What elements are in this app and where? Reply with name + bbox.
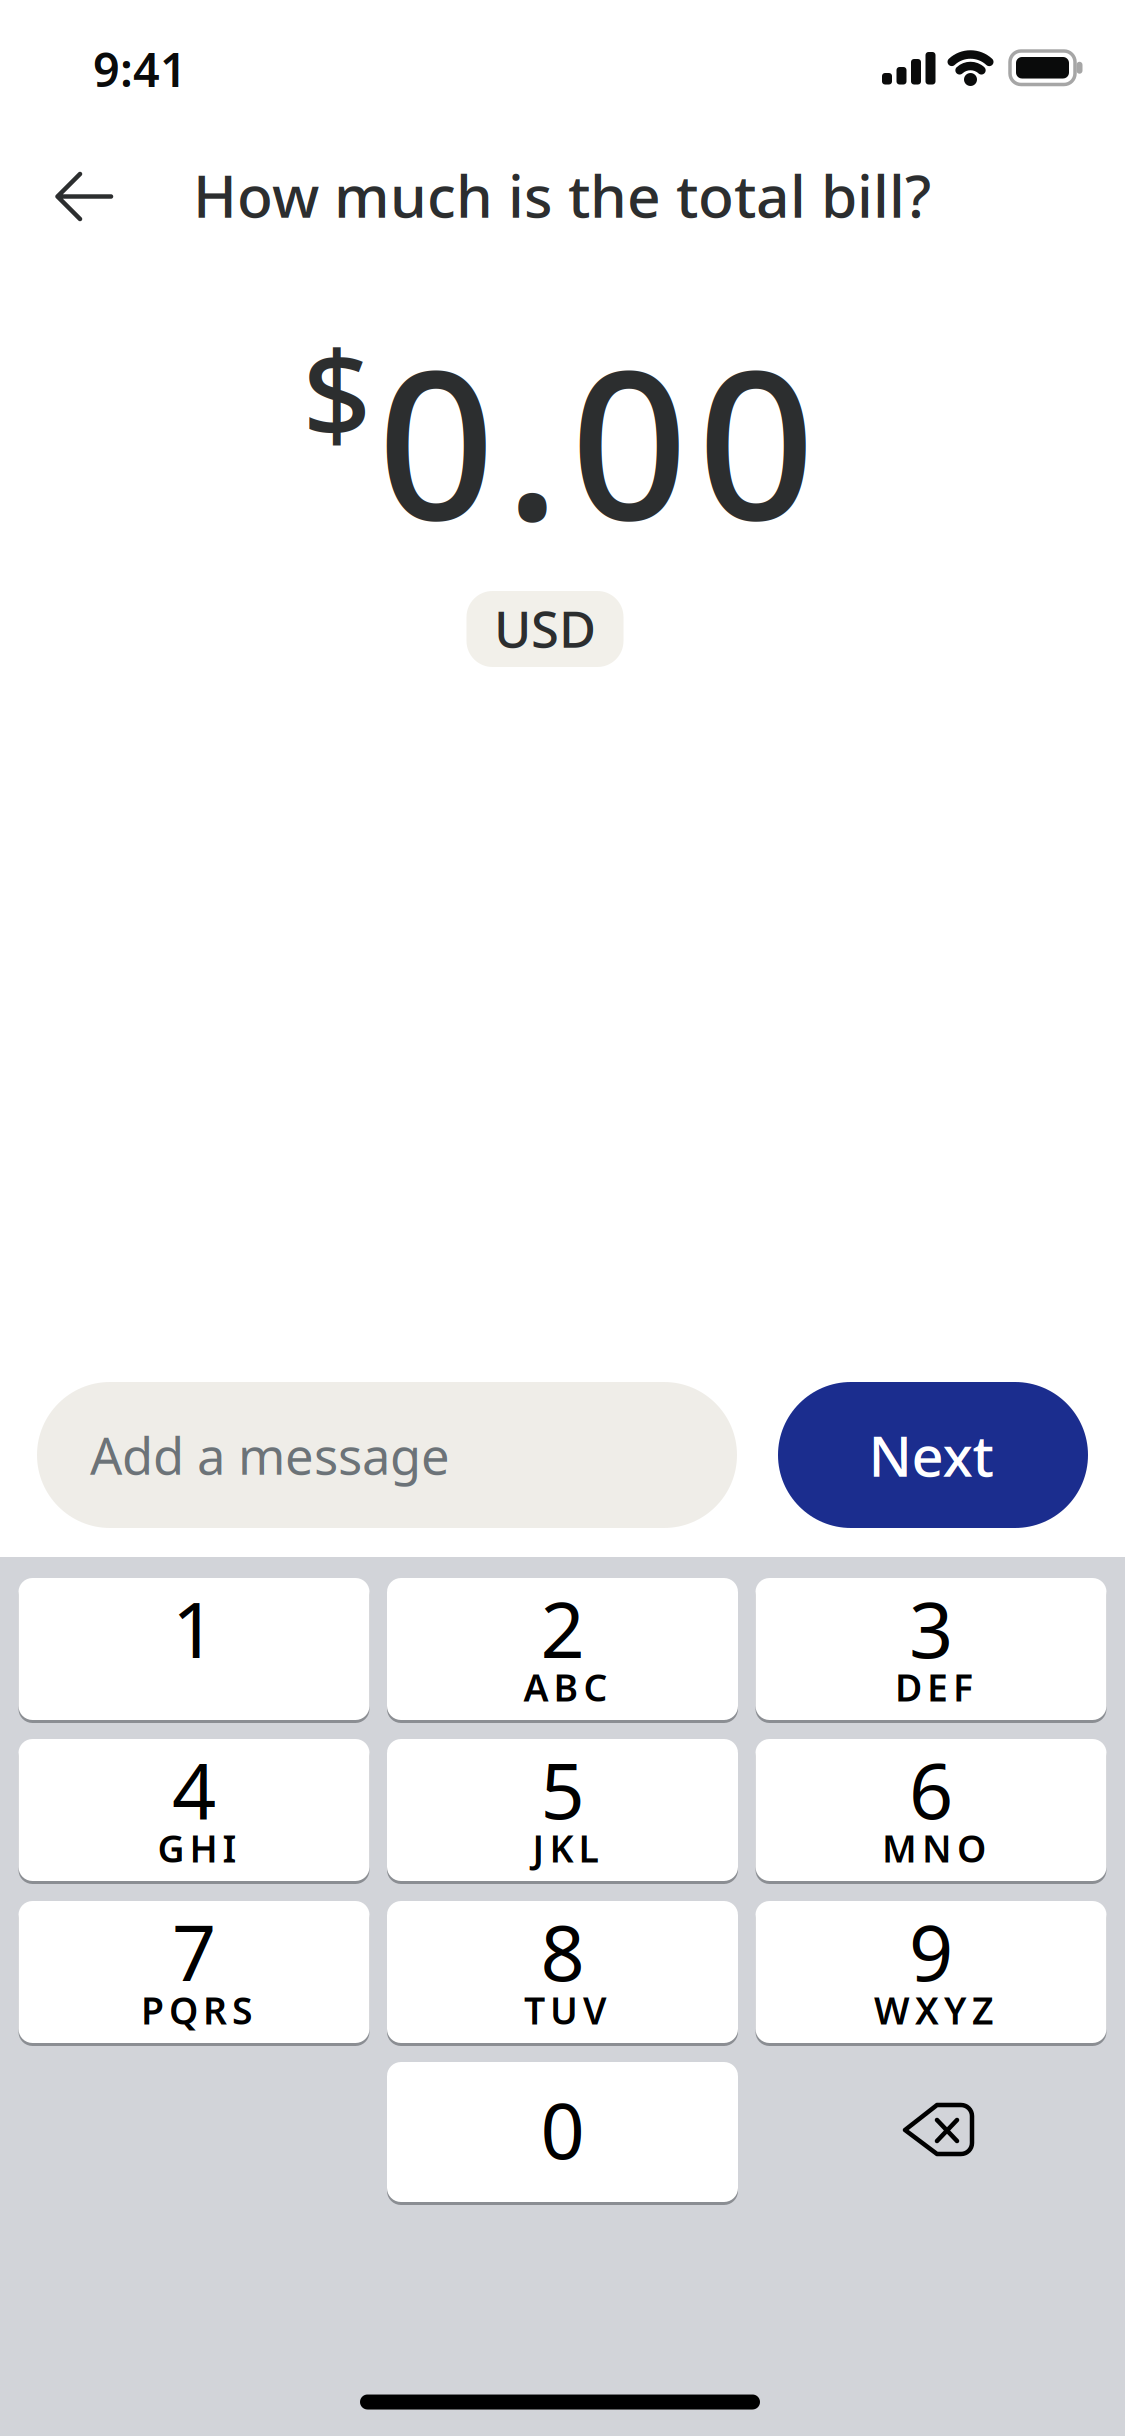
staticText: TUV (524, 1985, 607, 2035)
staticText: PQRS (141, 1985, 253, 2035)
staticText: JKL (532, 1823, 598, 1873)
staticText: 3 (909, 1577, 953, 1679)
staticText: MNO (882, 1823, 986, 1873)
staticText: 5 (540, 1738, 584, 1840)
staticText: 8 (540, 1900, 584, 2002)
staticText: 7 (172, 1900, 216, 2002)
staticText: 0.00 (377, 304, 814, 576)
staticText: 9 (909, 1900, 953, 2002)
staticText: 6 (909, 1738, 953, 1840)
staticText: USD (494, 594, 596, 662)
staticText: 4 (172, 1738, 216, 1840)
staticText: Add a message (90, 1421, 450, 1489)
staticText: 2 (540, 1577, 584, 1679)
staticText: $ (302, 312, 371, 472)
staticText: How much is the total bill? (193, 156, 931, 234)
staticText: Next (868, 1418, 993, 1492)
staticText: GHI (157, 1823, 236, 1873)
staticText: DEF (895, 1662, 973, 1712)
staticText: 0 (540, 2078, 584, 2180)
staticText: WXYZ (874, 1985, 994, 2035)
staticText: ABC (523, 1662, 607, 1712)
staticText: 1 (172, 1577, 216, 1679)
staticText: 9:41 (93, 38, 187, 100)
